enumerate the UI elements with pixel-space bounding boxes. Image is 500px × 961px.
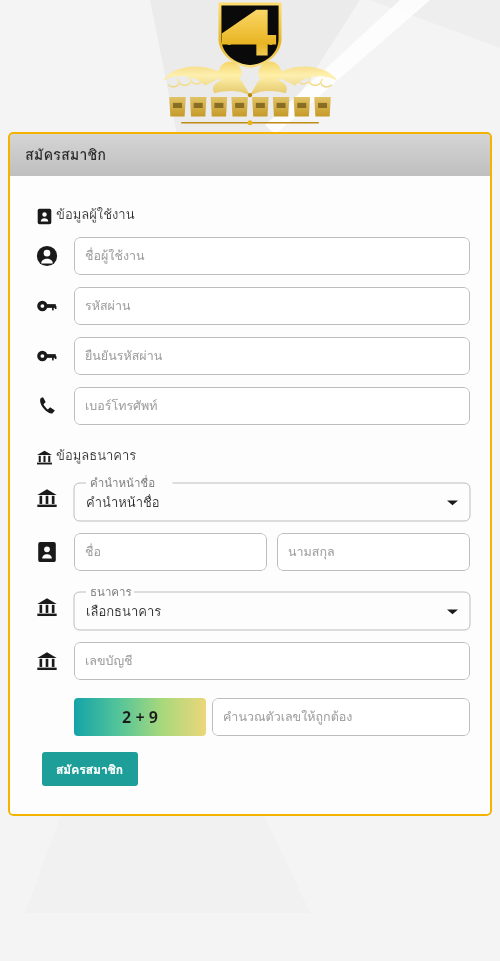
button[interactable]: ยืนยันรหัสผ่าน [74,337,470,375]
staticText: คำนำหน้าชื่อ [86,492,160,513]
staticText: ธนาคาร [90,583,132,601]
staticText: เบอร์โทรศัพท์ [85,396,158,416]
button[interactable]: เบอร์โทรศัพท์ [74,387,470,425]
staticText: เลือกธนาคาร [86,601,162,622]
staticText: ชื่อผู้ใช้งาน [85,246,145,266]
button[interactable]: เลขบัญชี [74,642,470,680]
staticText: ข้อมูลธนาคาร [56,445,137,466]
staticText: 2 + 9 [122,706,158,728]
staticText: รหัสผ่าน [85,296,131,316]
button[interactable]: ชื่อผู้ใช้งาน [74,237,470,275]
button[interactable]: รหัสผ่าน [74,287,470,325]
staticText: นามสกุล [288,542,335,562]
button[interactable]: คำนำหน้าชื่อ [74,483,470,521]
button[interactable]: Captcha 2 + 9 [74,698,206,736]
staticText: ยืนยันรหัสผ่าน [85,346,163,366]
button[interactable]: นามสกุล [277,533,470,571]
button[interactable]: ชื่อ [74,533,267,571]
staticText: สมัครสมาชิก [25,143,107,166]
button[interactable]: สมัครสมาชิก [42,752,138,786]
staticText: ชื่อ [85,542,101,562]
staticText: คำนวณตัวเลขให้ถูกต้อง [223,707,353,727]
staticText: สมัครสมาชิก [56,760,124,779]
button[interactable]: เลือกธนาคาร [74,592,470,630]
staticText: เลขบัญชี [85,651,133,671]
other: 4WinLotto logo [145,0,355,126]
button[interactable]: คำนวณตัวเลขให้ถูกต้อง [212,698,470,736]
button[interactable]: สมัครสมาชิก [8,132,492,176]
staticText: ข้อมูลผู้ใช้งาน [56,204,135,225]
staticText: คำนำหน้าชื่อ [90,474,156,492]
